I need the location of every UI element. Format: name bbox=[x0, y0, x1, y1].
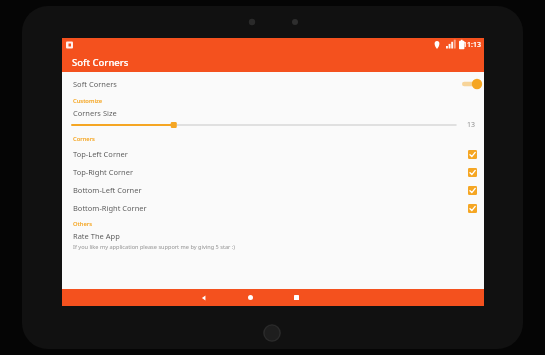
button[interactable]: Corners Size bbox=[62, 107, 484, 132]
button[interactable]: Bottom-Right Corner bbox=[62, 199, 484, 217]
button[interactable]: Back bbox=[193, 289, 215, 306]
button[interactable]: Top-Left Corner bbox=[62, 145, 484, 163]
staticText: Bottom-Right Corner bbox=[73, 203, 147, 213]
staticText: Bottom-Left Corner bbox=[73, 185, 142, 195]
button[interactable]: Soft Corners bbox=[62, 73, 484, 94]
staticText: Rate The App bbox=[73, 231, 120, 241]
button[interactable]: Top-Right Corner checkbox bbox=[466, 166, 478, 178]
button[interactable]: Bottom-Right Corner checkbox bbox=[466, 202, 478, 214]
staticText: Soft Corners bbox=[73, 79, 117, 89]
staticText: Corners bbox=[73, 135, 95, 143]
button[interactable]: Bottom-Left Corner bbox=[62, 181, 484, 199]
button[interactable]: Soft Corners toggle bbox=[461, 77, 483, 91]
staticText: Corners Size bbox=[73, 108, 117, 118]
staticText: 13 bbox=[467, 120, 476, 130]
staticText: Customize bbox=[73, 97, 103, 105]
button[interactable]: Bottom-Left Corner checkbox bbox=[466, 184, 478, 196]
button[interactable]: Recent apps bbox=[285, 289, 307, 306]
button[interactable]: Rate The App bbox=[62, 230, 484, 255]
staticText: Top-Right Corner bbox=[73, 167, 134, 177]
button[interactable]: Home bbox=[239, 289, 261, 306]
button[interactable]: Top-Left Corner checkbox bbox=[466, 148, 478, 160]
staticText: If you like my application please suppor… bbox=[73, 243, 236, 251]
button[interactable]: Top-Right Corner bbox=[62, 163, 484, 181]
staticText: Others bbox=[73, 220, 92, 228]
staticText: Soft Corners bbox=[72, 56, 129, 69]
staticText: 11:13 bbox=[463, 40, 481, 50]
staticText: Top-Left Corner bbox=[73, 149, 128, 159]
